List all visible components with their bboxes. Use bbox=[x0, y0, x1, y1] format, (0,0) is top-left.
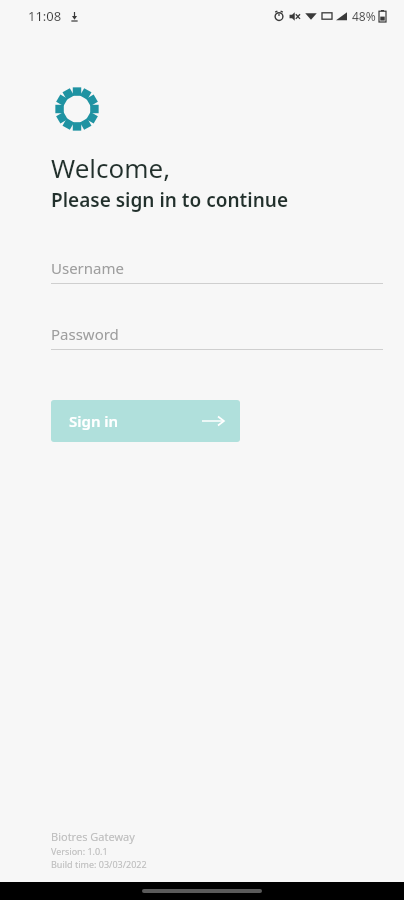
staticText: Welcome, bbox=[51, 150, 171, 185]
staticText: Password bbox=[51, 324, 119, 344]
button[interactable]: Password bbox=[51, 324, 383, 350]
staticText: Biotres Gateway bbox=[51, 829, 135, 844]
button[interactable]: Sign in bbox=[51, 400, 240, 442]
staticText: 11:08 bbox=[28, 7, 62, 25]
button[interactable]: Username bbox=[51, 258, 383, 284]
staticText: 48% bbox=[352, 8, 376, 24]
staticText: Build time: 03/03/2022 bbox=[51, 858, 147, 870]
staticText: Please sign in to continue bbox=[51, 187, 289, 213]
staticText: Username bbox=[51, 258, 124, 278]
staticText: Sign in bbox=[69, 411, 119, 431]
staticText: Version: 1.0.1 bbox=[51, 845, 108, 857]
